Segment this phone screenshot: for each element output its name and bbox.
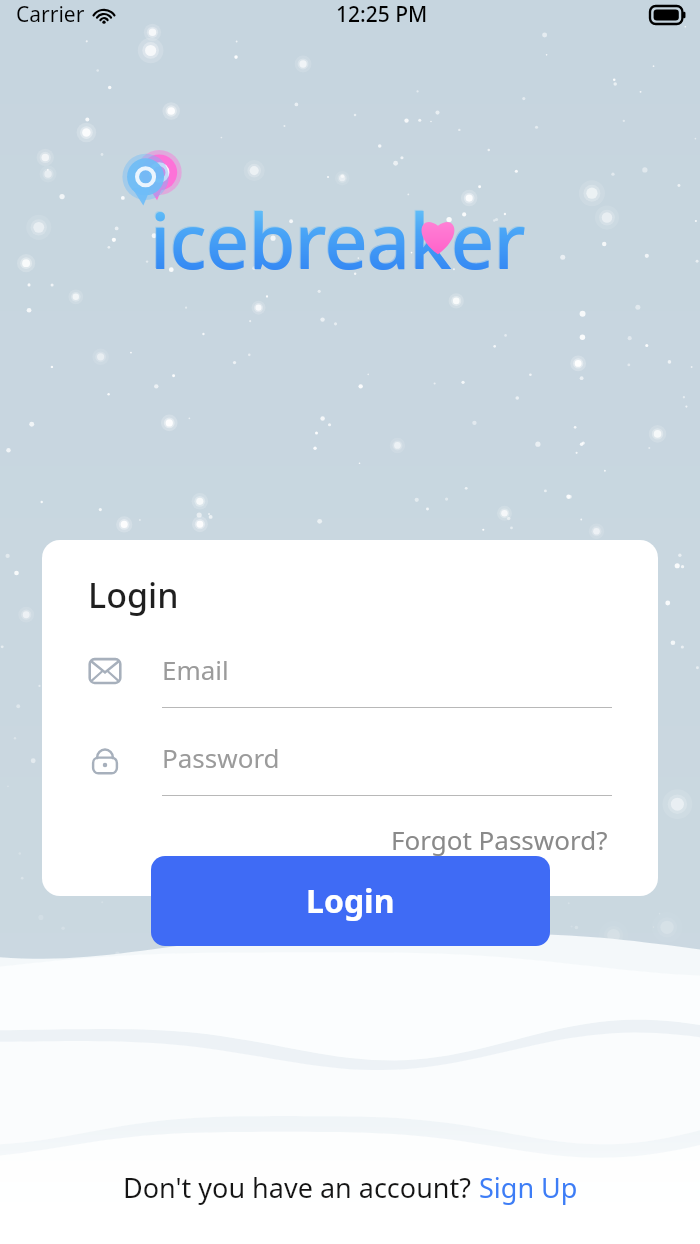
staticText: icebreaker <box>149 187 524 291</box>
staticText: Password <box>162 740 280 775</box>
button[interactable]: Sign Up <box>479 1169 578 1206</box>
staticText: Login <box>88 572 179 618</box>
other: Email field <box>88 652 162 704</box>
staticText: Login <box>306 879 395 923</box>
staticText: 12:25 PM <box>336 0 428 29</box>
button[interactable]: Login <box>151 856 550 946</box>
staticText: icebreaker <box>150 188 525 292</box>
button[interactable]: Password field <box>88 740 612 796</box>
staticText: Email <box>162 652 229 687</box>
staticText: Carrier <box>16 0 85 29</box>
staticText: Don't you have an account? <box>123 1169 479 1206</box>
other: Password field <box>88 740 162 792</box>
button[interactable]: Email field <box>88 652 612 708</box>
staticText: Sign Up <box>479 1169 578 1206</box>
button[interactable]: Forgot Password? <box>387 818 612 861</box>
staticText: Forgot Password? <box>391 822 608 857</box>
